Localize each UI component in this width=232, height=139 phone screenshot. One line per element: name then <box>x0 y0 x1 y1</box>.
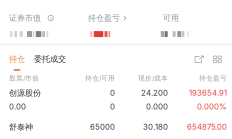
button[interactable]: Layout <box>213 56 222 71</box>
staticText: 193654.91 <box>189 88 227 98</box>
staticText: 0.00 <box>9 102 26 111</box>
staticText: 65000 <box>90 122 115 132</box>
staticText: 委托成交 <box>34 54 66 64</box>
staticText: 持仓盈亏 <box>88 13 120 23</box>
staticText: 0 <box>110 88 115 98</box>
staticText: 30.180 <box>143 122 168 132</box>
staticText: 证券市值 <box>9 13 41 23</box>
button[interactable]: Expand <box>194 56 204 71</box>
staticText: 0 <box>110 102 115 111</box>
button[interactable]: 创源股份 <box>0 88 232 111</box>
staticText: 持仓/可用 <box>85 74 115 82</box>
staticText: 股票/市值 <box>9 74 39 82</box>
staticText: 现价/成本 <box>138 74 168 82</box>
staticText: 0.000 <box>146 102 168 111</box>
staticText: 0.000% <box>197 102 227 111</box>
staticText: 舒泰神 <box>9 122 33 132</box>
staticText: 24.200 <box>141 88 168 98</box>
staticText: 持仓 <box>9 54 25 64</box>
button[interactable]: 委托成交 <box>34 54 66 71</box>
staticText: 持仓盈亏 <box>199 74 227 82</box>
staticText: 可用 <box>163 13 179 23</box>
button[interactable]: 舒泰神 <box>0 122 232 132</box>
button[interactable]: 持仓 <box>9 54 25 71</box>
staticText: 654875.00 <box>187 122 227 132</box>
staticText: 创源股份 <box>9 88 41 98</box>
